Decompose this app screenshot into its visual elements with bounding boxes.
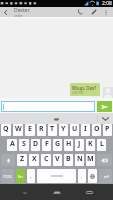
button[interactable]: Space (37, 169, 76, 183)
button[interactable]: J (75, 139, 84, 151)
button[interactable]: C (41, 154, 51, 166)
staticText: K (88, 139, 93, 149)
staticText: P (105, 124, 110, 134)
button[interactable]: R (37, 124, 46, 136)
staticText: Z (20, 154, 25, 164)
staticText: 2:08 (102, 0, 112, 7)
staticText: online (14, 14, 23, 17)
staticText: S (22, 139, 26, 149)
button[interactable]: V (53, 154, 62, 166)
staticText: J (78, 139, 81, 149)
button[interactable]: L (97, 139, 106, 151)
staticText: En (18, 174, 23, 179)
staticText: H (66, 139, 72, 149)
button[interactable]: Back (0, 7, 11, 17)
staticText: L (100, 139, 104, 149)
staticText: O (94, 124, 100, 134)
staticText: M (87, 154, 94, 164)
button[interactable]: F (42, 139, 51, 151)
button[interactable]: W (13, 124, 23, 136)
staticText: W (15, 124, 22, 134)
button[interactable]: Symbols (1, 169, 14, 183)
staticText: T (50, 124, 55, 134)
button[interactable]: T (48, 124, 57, 136)
staticText: Dexter (14, 7, 30, 14)
button[interactable]: Hide suggestions (98, 113, 113, 124)
staticText: E (28, 124, 32, 134)
button[interactable]: . (78, 169, 86, 183)
button[interactable]: B (64, 154, 73, 166)
staticText: Wsup, Dex? (72, 85, 97, 91)
button[interactable]: Settings (88, 169, 97, 183)
staticText: G (55, 139, 61, 149)
button[interactable] (1, 101, 95, 112)
button[interactable]: Back (15, 184, 35, 200)
button[interactable]: Delete (97, 154, 112, 166)
button[interactable]: M (86, 154, 95, 166)
staticText: X (32, 154, 37, 164)
button[interactable]: More options (102, 7, 110, 17)
staticText: I (84, 124, 87, 134)
staticText: N (77, 154, 83, 164)
button[interactable]: Call (75, 7, 84, 17)
button[interactable]: Y (59, 124, 68, 136)
staticText: F (45, 139, 49, 149)
button[interactable]: P (103, 124, 112, 136)
staticText: R (39, 124, 44, 134)
button[interactable]: Recent apps (79, 184, 99, 200)
button[interactable]: O (92, 124, 101, 136)
staticText: D (33, 139, 39, 149)
button[interactable]: K (86, 139, 95, 151)
button[interactable]: H (64, 139, 73, 151)
staticText: C (44, 154, 49, 164)
button[interactable]: Home (47, 184, 67, 200)
staticText: ?123 (3, 174, 12, 179)
button[interactable]: , (27, 169, 35, 183)
button[interactable]: D (31, 139, 40, 151)
button[interactable]: Z (17, 154, 27, 166)
button[interactable]: S (19, 139, 29, 151)
staticText: B (66, 154, 71, 164)
staticText: . (81, 173, 83, 180)
button[interactable]: E (25, 124, 35, 136)
staticText: U (72, 124, 78, 134)
staticText: , (30, 173, 32, 180)
button[interactable]: X (29, 154, 39, 166)
button[interactable]: G (53, 139, 62, 151)
button[interactable]: Attach file (89, 7, 98, 17)
button[interactable]: Change input language (16, 169, 25, 183)
button[interactable]: U (70, 124, 79, 136)
button[interactable]: A (7, 139, 17, 151)
button[interactable]: N (75, 154, 84, 166)
button[interactable]: Q (1, 124, 11, 136)
staticText: Q (3, 124, 9, 134)
button[interactable]: I (81, 124, 90, 136)
button[interactable]: Send (97, 101, 112, 112)
staticText: Y (61, 124, 66, 134)
staticText: V (55, 154, 60, 164)
button[interactable]: Wsup, Dex? (70, 83, 100, 96)
button[interactable]: Enter (99, 169, 112, 183)
staticText: 2:08 PM (72, 91, 84, 95)
staticText: A (10, 139, 15, 149)
button[interactable]: Shift (1, 154, 15, 166)
